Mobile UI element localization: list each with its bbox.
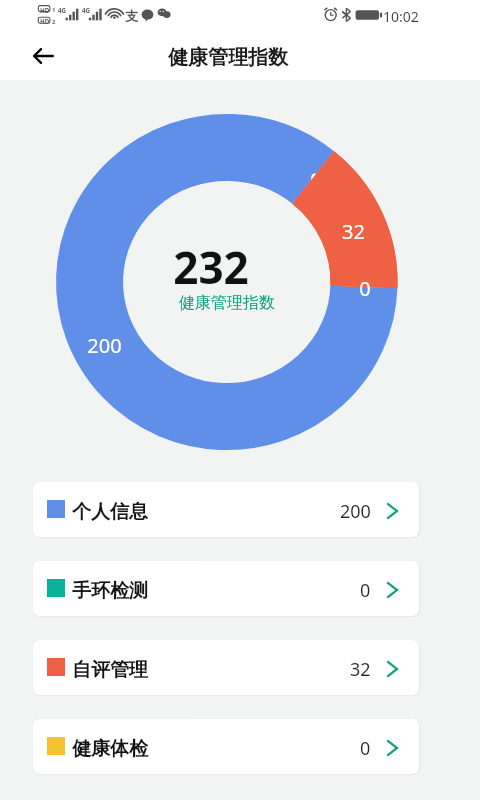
staticText: HD — [40, 17, 50, 25]
staticText: 200 — [87, 332, 122, 359]
staticText: 支 — [125, 8, 138, 24]
staticText: 健康体检 — [72, 737, 148, 761]
button[interactable]: 自评管理 — [33, 640, 419, 695]
staticText: HD — [40, 6, 50, 14]
staticText: 1 — [52, 6, 56, 14]
staticText: 0 — [359, 275, 371, 302]
staticText: 0 — [360, 736, 371, 761]
staticText: 个人信息 — [72, 500, 148, 524]
staticText: 手环检测 — [72, 579, 148, 603]
staticText: 10:02 — [383, 7, 419, 25]
button[interactable]: 健康体检 — [33, 719, 419, 774]
staticText: 健康管理指数 — [168, 45, 288, 70]
staticText: 健康管理指数 — [179, 293, 275, 313]
staticText: 32 — [342, 218, 365, 245]
staticText: 自评管理 — [72, 658, 148, 682]
staticText: 4G — [82, 6, 91, 14]
staticText: 32 — [350, 657, 371, 682]
staticText: 232 — [173, 237, 249, 297]
staticText: 4G — [58, 6, 67, 14]
staticText: 0 — [360, 578, 371, 603]
button[interactable]: 手环检测 — [33, 561, 419, 616]
staticText: 2 — [52, 18, 56, 26]
button[interactable]: Back — [20, 33, 66, 79]
staticText: 200 — [340, 499, 371, 524]
button[interactable]: 个人信息 — [33, 482, 419, 537]
